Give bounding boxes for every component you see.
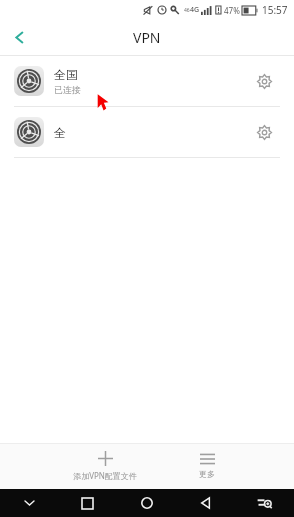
button[interactable]: Settings [244,61,284,101]
button[interactable]: Back [0,20,38,55]
staticText: 4G [190,5,200,15]
staticText: 46 [184,7,190,14]
staticText: 全国 [54,67,78,82]
staticText: 已连接 [54,84,81,95]
staticText: 更多 [199,469,215,479]
button[interactable]: Recents [58,489,117,517]
button[interactable]: 全国 [0,56,294,106]
button[interactable]: 添加VPN配置文件 [67,447,143,485]
button[interactable]: Hide [0,489,58,517]
staticText: 全 [54,125,66,140]
button[interactable]: 全 [0,107,294,157]
staticText: 15:57 [262,3,288,17]
button[interactable]: Back [176,489,235,517]
staticText: 47% [224,5,240,16]
button[interactable]: Screenshot [235,489,294,517]
button[interactable]: Home [117,489,176,517]
staticText: 添加VPN配置文件 [73,470,137,481]
staticText: VPN [133,28,161,47]
button[interactable]: 更多 [193,449,221,483]
button[interactable]: Settings [244,112,284,152]
